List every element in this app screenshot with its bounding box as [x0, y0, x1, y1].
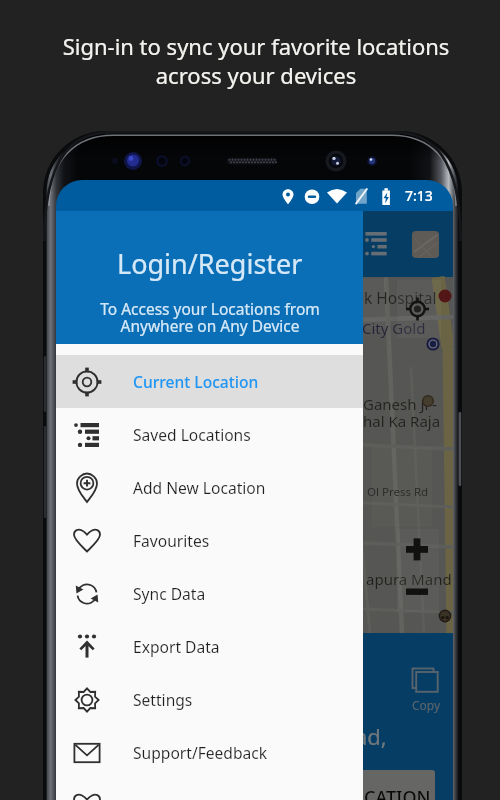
button[interactable]: Copy: [412, 668, 439, 695]
staticText: Copy: [412, 697, 441, 713]
staticText: 7:13: [405, 186, 433, 205]
staticText: apura Mandi: [366, 569, 453, 589]
button[interactable]: Current Location: [56, 355, 363, 408]
button[interactable]: Add New Location: [56, 461, 363, 514]
staticText: k Hospital: [364, 287, 437, 308]
staticText: Ganesh Ji - hal Ka Raja: [363, 394, 441, 432]
button[interactable]: Support/Feedback: [56, 726, 363, 779]
staticText: Settings: [133, 689, 193, 710]
button[interactable]: Export Data: [56, 620, 363, 673]
staticText: Saved Locations: [133, 424, 251, 445]
staticText: Sign-in to sync your favorite locations …: [6, 31, 500, 90]
staticText: Ol Press Rd: [367, 484, 429, 500]
staticText: ad,: [355, 721, 387, 751]
staticText: Login/Register: [117, 245, 303, 282]
staticText: Favourites: [133, 530, 210, 551]
button[interactable]: Zoom in: [404, 535, 432, 563]
button[interactable]: Favourites: [56, 514, 363, 567]
button[interactable]: List: [360, 227, 392, 259]
staticText: Sync Data: [133, 583, 206, 604]
button[interactable]: My location: [405, 296, 431, 322]
button[interactable]: Settings: [56, 673, 363, 726]
staticText: Current Location: [133, 371, 259, 392]
staticText: Add New Location: [133, 477, 266, 498]
button[interactable]: Sync Data: [56, 567, 363, 620]
button[interactable]: Support/Feedback: [56, 779, 363, 800]
button[interactable]: Map view: [412, 231, 439, 258]
staticText: To Access your Locations from Anywhere o…: [100, 298, 320, 337]
staticText: CATION: [364, 785, 431, 800]
staticText: Export Data: [133, 636, 220, 657]
staticText: City Gold: [362, 318, 426, 338]
button[interactable]: Zoom out: [404, 578, 432, 606]
button[interactable]: Saved Locations: [56, 408, 363, 461]
staticText: Support/Feedback: [133, 742, 268, 763]
button[interactable]: CATION: [362, 770, 435, 800]
